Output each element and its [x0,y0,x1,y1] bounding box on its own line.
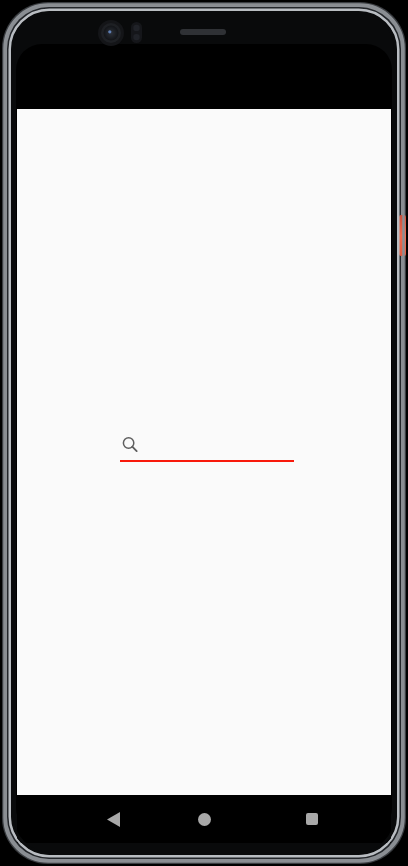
button[interactable]: Recent apps [278,795,346,843]
button[interactable]: Back [79,795,147,843]
button[interactable]: Home [170,795,238,843]
button[interactable]: Search [120,435,294,465]
